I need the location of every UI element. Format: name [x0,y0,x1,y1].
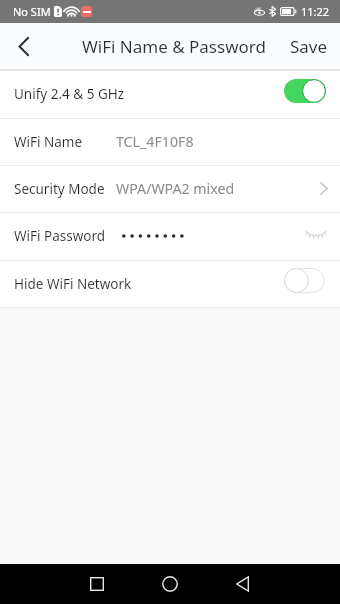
staticText: No SIM [13,4,51,19]
staticText: Unify 2.4 & 5 GHz [14,85,125,103]
button[interactable]: Hide WiFi Network [0,260,340,307]
button[interactable]: Hide WiFi Network, off [284,268,325,293]
button[interactable]: Home [150,564,190,604]
staticText: Save [290,35,328,58]
button[interactable]: Save [272,23,340,69]
button[interactable]: Unify 2.4 & 5 GHz [0,70,340,117]
button[interactable]: Unify 2.4 and 5 GHz, on [284,79,326,103]
staticText: TCL_4F10F8 [116,132,194,151]
staticText: WPA/WPA2 mixed [116,179,235,198]
button[interactable]: Security Mode [0,165,340,212]
staticText: WiFi Password [14,227,106,245]
button[interactable]: Back [0,23,46,69]
button[interactable]: Back [222,564,262,604]
staticText: 11:22 [301,4,330,19]
button[interactable]: WiFi Name [0,118,340,165]
other: Show password [305,227,327,241]
staticText: Security Mode [14,180,105,198]
button[interactable]: WiFi Password [0,212,340,259]
staticText: Hide WiFi Network [14,275,132,293]
button[interactable]: Recent apps [77,564,117,604]
staticText: WiFi Name & Password [82,35,266,58]
staticText: WiFi Name [14,133,83,151]
